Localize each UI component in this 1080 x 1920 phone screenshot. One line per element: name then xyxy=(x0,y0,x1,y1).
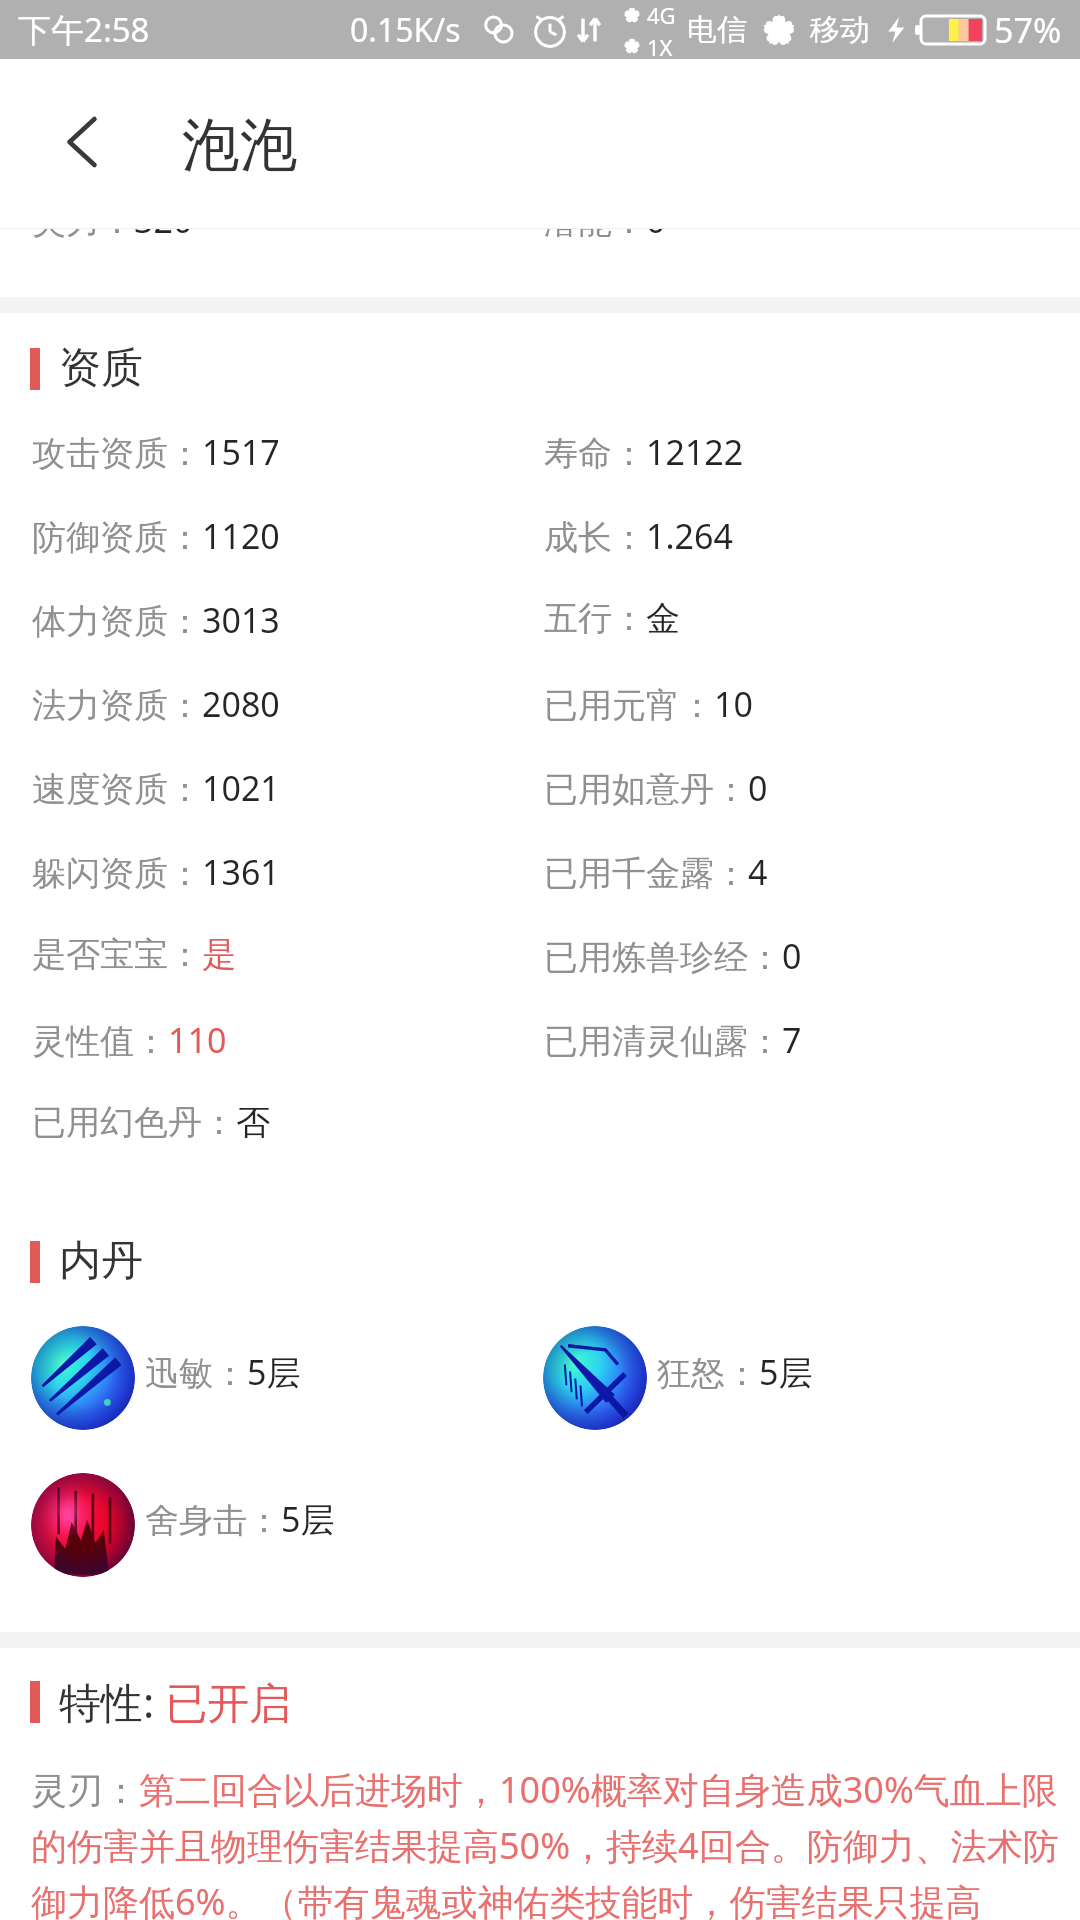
staticText: 防御资质：1120 xyxy=(32,513,280,559)
staticText: 特性: 已开启 xyxy=(59,1673,292,1730)
staticText: 是否宝宝：是 xyxy=(32,933,236,976)
button[interactable]: 是否宝宝：是 xyxy=(0,907,544,991)
staticText: 泡泡 xyxy=(182,109,298,182)
staticText: 速度资质：1021 xyxy=(32,765,280,811)
button[interactable]: 躲闪资质：1361 xyxy=(0,823,544,907)
staticText: 躲闪资质：1361 xyxy=(32,849,280,895)
staticText: 迅敏：5层 xyxy=(145,1349,301,1395)
button[interactable]: 速度资质：1021 xyxy=(0,739,544,823)
staticText: 1X xyxy=(647,32,673,59)
staticText: 潜能：0 xyxy=(544,197,666,243)
staticText: 已用元宵：10 xyxy=(544,681,753,727)
staticText: 法力资质：2080 xyxy=(32,681,280,727)
button[interactable]: 已用清灵仙露：7 xyxy=(544,991,1080,1075)
button[interactable]: 寿命：12122 xyxy=(544,403,1080,487)
button[interactable]: 成长：1.264 xyxy=(544,487,1080,571)
staticText: 移动 xyxy=(810,11,870,49)
staticText: 体力资质：3013 xyxy=(32,597,280,643)
staticText: 下午2:58 xyxy=(18,7,150,52)
button[interactable]: 五行：金 xyxy=(544,571,1080,655)
button[interactable]: 已用如意丹：0 xyxy=(544,739,1080,823)
staticText: 灵刃：第二回合以后进场时，100%概率对自身造成30%气血上限的伤害并且物理伤害… xyxy=(31,1765,1072,1920)
staticText: 灵性值：110 xyxy=(32,1017,227,1063)
staticText: 4G xyxy=(647,0,676,30)
staticText: 0.15K/s xyxy=(350,8,461,52)
staticText: 资质 xyxy=(59,342,143,395)
button[interactable]: Back xyxy=(58,118,106,166)
staticText: 57% xyxy=(994,7,1062,53)
staticText: 已用千金露：4 xyxy=(544,849,768,895)
staticText: 已用清灵仙露：7 xyxy=(544,1017,802,1063)
staticText: 舍身击：5层 xyxy=(145,1496,335,1542)
button[interactable]: 迅敏：5层 xyxy=(25,1320,301,1430)
button[interactable]: 灵性值：110 xyxy=(0,991,544,1075)
button[interactable]: 狂怒：5层 xyxy=(537,1320,813,1430)
staticText: 电信 xyxy=(687,11,747,49)
button[interactable]: 法力资质：2080 xyxy=(0,655,544,739)
staticText: 已用幻色丹：否 xyxy=(32,1101,270,1144)
staticText: 成长：1.264 xyxy=(544,513,733,559)
button[interactable]: 已用炼兽珍经：0 xyxy=(544,907,1080,991)
staticText: 寿命：12122 xyxy=(544,429,744,475)
staticText: 已用炼兽珍经：0 xyxy=(544,933,802,979)
staticText: 内丹 xyxy=(59,1235,143,1288)
button[interactable]: 舍身击：5层 xyxy=(25,1467,335,1577)
staticText: 五行：金 xyxy=(544,597,680,640)
staticText: 狂怒：5层 xyxy=(657,1349,813,1395)
staticText: 攻击资质：1517 xyxy=(32,429,280,475)
button[interactable]: 防御资质：1120 xyxy=(0,487,544,571)
button[interactable]: 已用幻色丹：否 xyxy=(0,1075,544,1159)
button[interactable]: 已用元宵：10 xyxy=(544,655,1080,739)
button[interactable]: 攻击资质：1517 xyxy=(0,403,544,487)
staticText: 灵力：320 xyxy=(32,197,193,243)
button[interactable]: 已用千金露：4 xyxy=(544,823,1080,907)
button[interactable]: 体力资质：3013 xyxy=(0,571,544,655)
staticText: 已用如意丹：0 xyxy=(544,765,768,811)
